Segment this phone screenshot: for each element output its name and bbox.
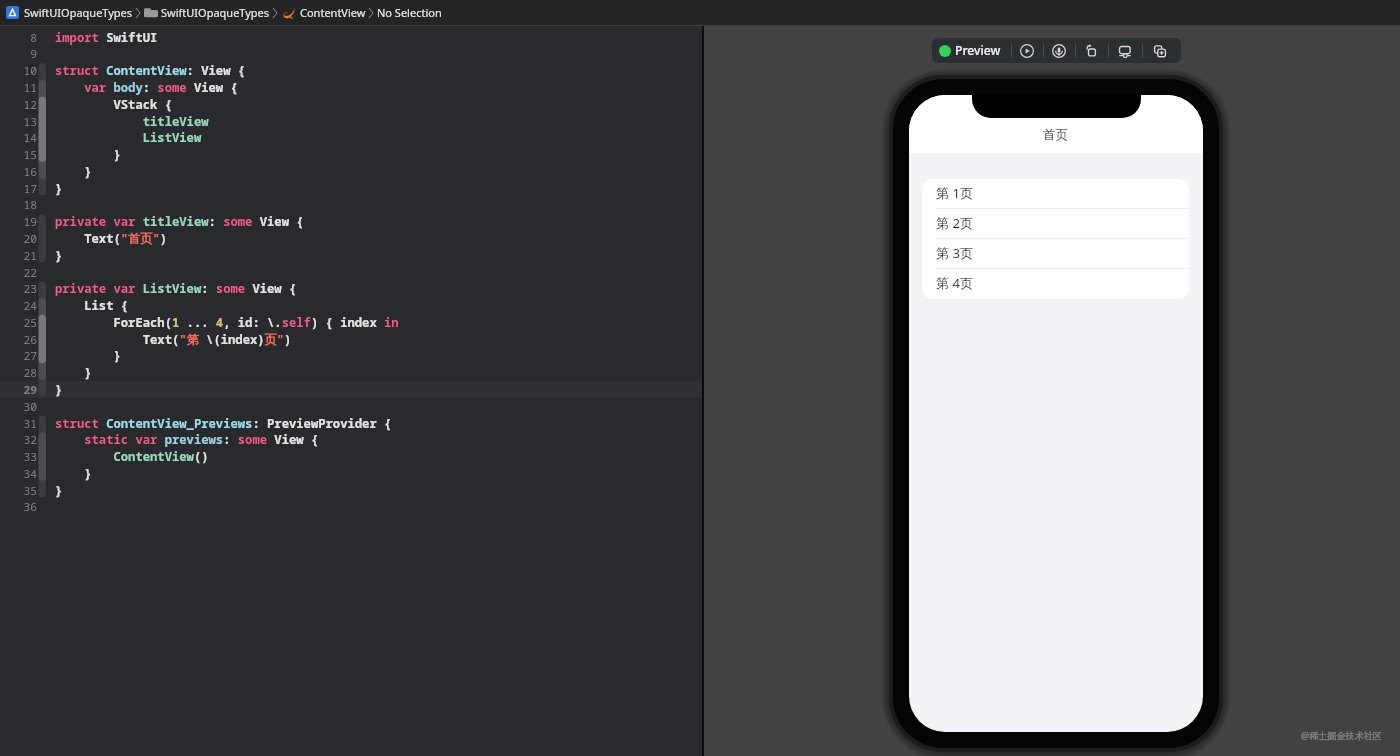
staticText: SwiftUIOpaqueTypes [24, 5, 133, 20]
staticText: 第 4页 [936, 274, 974, 292]
other: Live preview [1052, 44, 1066, 58]
staticText: 18 [0, 197, 37, 212]
staticText: 31 [0, 416, 37, 431]
staticText: 8 [0, 30, 37, 45]
staticText: } [55, 465, 92, 482]
staticText: 15 [0, 147, 37, 162]
staticText: } [55, 347, 121, 364]
staticText: 32 [0, 432, 37, 447]
staticText: } [55, 364, 92, 381]
staticText: @稀土掘金技术社区 [1301, 729, 1382, 741]
staticText: List { [55, 297, 129, 314]
staticText: 第 3页 [936, 244, 974, 262]
staticText: 25 [0, 315, 37, 330]
staticText: 11 [0, 80, 37, 95]
staticText: 17 [0, 181, 37, 196]
button[interactable]: SwiftUIOpaqueTypes [144, 0, 270, 25]
staticText: struct ContentView_Previews: PreviewProv… [55, 415, 392, 432]
staticText: import SwiftUI [55, 29, 158, 46]
staticText: No Selection [377, 5, 442, 20]
staticText: ListView [55, 129, 202, 146]
staticText: 10 [0, 63, 37, 78]
button[interactable]: Run preview [1012, 38, 1043, 63]
staticText: 34 [0, 466, 37, 481]
staticText: 26 [0, 332, 37, 347]
staticText: 36 [0, 499, 37, 514]
staticText: Text("第 \(index)页") [55, 331, 292, 348]
staticText: 33 [0, 449, 37, 464]
staticText: 23 [0, 281, 37, 296]
staticText: 12 [0, 97, 37, 112]
staticText: } [55, 381, 63, 398]
button[interactable]: SwiftUIOpaqueTypes [6, 0, 133, 25]
staticText: ContentView() [55, 448, 209, 465]
other: Add preview [1152, 43, 1168, 59]
staticText: ForEach(1 ... 4, id: \.self) { index in [55, 314, 399, 331]
staticText: private var titleView: some View { [55, 213, 304, 230]
other: Device settings [1117, 43, 1133, 59]
staticText: var body: some View { [55, 79, 238, 96]
button[interactable]: No Selection [377, 0, 442, 25]
staticText: 22 [0, 265, 37, 280]
staticText: } [55, 247, 63, 264]
button[interactable]: ContentView [282, 0, 366, 25]
button[interactable]: Preview [932, 38, 1011, 63]
staticText: Text("首页") [55, 230, 168, 247]
button[interactable]: Add preview [1143, 38, 1181, 63]
staticText: private var ListView: some View { [55, 280, 297, 297]
staticText: 24 [0, 298, 37, 313]
staticText: 14 [0, 130, 37, 145]
staticText: 27 [0, 348, 37, 363]
staticText: 20 [0, 231, 37, 246]
button[interactable]: Refresh preview [1076, 38, 1108, 63]
staticText: 16 [0, 164, 37, 179]
other: Refresh preview [1084, 43, 1099, 58]
staticText: 首页 [1043, 127, 1069, 143]
staticText: static var previews: some View { [55, 431, 319, 448]
staticText: 30 [0, 399, 37, 414]
staticText: 第 1页 [936, 184, 974, 202]
staticText: 28 [0, 365, 37, 380]
staticText: 第 2页 [936, 214, 974, 232]
staticText: 21 [0, 248, 37, 263]
staticText: SwiftUIOpaqueTypes [161, 5, 270, 20]
staticText: 29 [0, 382, 37, 397]
staticText: 13 [0, 114, 37, 129]
staticText: VStack { [55, 96, 172, 113]
staticText: } [55, 146, 121, 163]
staticText: 19 [0, 214, 37, 229]
button[interactable]: 第 4页 [922, 269, 1189, 299]
button[interactable]: 第 3页 [922, 239, 1189, 269]
button[interactable]: 第 2页 [922, 209, 1189, 239]
staticText: Preview [955, 42, 1001, 59]
staticText: ContentView [300, 5, 366, 20]
button[interactable]: Live preview [1044, 38, 1075, 63]
staticText: 35 [0, 483, 37, 498]
staticText: } [55, 180, 63, 197]
staticText: titleView [55, 113, 209, 130]
staticText: } [55, 163, 92, 180]
staticText: 9 [0, 46, 37, 61]
button[interactable]: 第 1页 [922, 179, 1189, 209]
other: Run preview [1020, 44, 1034, 58]
button[interactable]: Device settings [1109, 38, 1142, 63]
staticText: } [55, 482, 63, 499]
staticText: struct ContentView: View { [55, 62, 246, 79]
